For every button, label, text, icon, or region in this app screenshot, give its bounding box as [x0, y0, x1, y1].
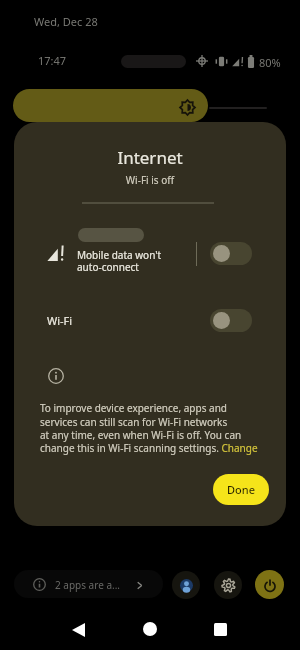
button[interactable]: Wi-Fi [14, 300, 286, 336]
button[interactable]: User account [172, 571, 200, 599]
staticText: Wi-Fi [47, 313, 73, 328]
staticText: To improve device experience, apps and s… [40, 401, 258, 454]
staticText: Wed, Dec 28 [34, 14, 98, 29]
staticText: 2 apps are a... [55, 578, 121, 592]
button[interactable]: Done [213, 474, 269, 505]
staticText: 17:47 [38, 53, 67, 68]
staticText: Wi-Fi is off [14, 173, 286, 187]
button[interactable]: Brightness [13, 89, 208, 122]
button[interactable]: Home [129, 610, 171, 650]
button[interactable]: Power [255, 570, 284, 599]
button[interactable]: Back [57, 610, 99, 650]
button[interactable]: Mobile data won't auto-connect [14, 220, 286, 272]
button[interactable]: Toggle off [210, 309, 252, 332]
staticText: Internet [14, 146, 286, 169]
button[interactable]: Settings [214, 571, 242, 599]
staticText: 80% [259, 55, 281, 70]
staticText: Mobile data won't auto-connect [77, 248, 162, 274]
button[interactable]: Recent apps [199, 610, 241, 650]
button[interactable]: Toggle off [210, 242, 252, 265]
button[interactable]: 2 apps are a... [14, 570, 163, 598]
staticText: Done [227, 482, 255, 497]
